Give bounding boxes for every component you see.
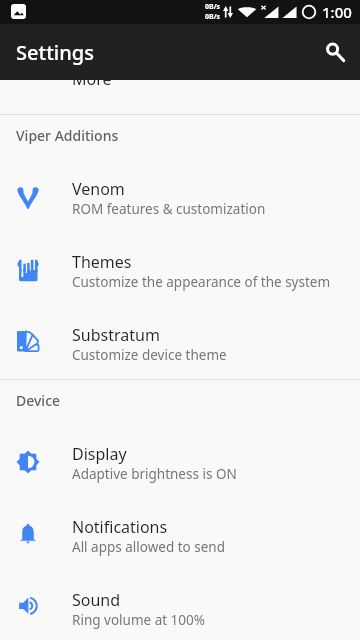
staticText: Themes [72, 251, 132, 273]
staticText: All apps allowed to send [72, 538, 226, 556]
button[interactable]: Display [0, 425, 360, 498]
staticText: Ring volume at 100% [72, 611, 205, 629]
button[interactable]: Search [312, 32, 352, 72]
staticText: Display [72, 443, 127, 465]
button[interactable]: Notifications [0, 498, 360, 571]
staticText: More [72, 68, 112, 90]
button[interactable]: Venom [0, 160, 360, 233]
staticText: Device [16, 391, 61, 410]
button[interactable]: Substratum [0, 306, 360, 379]
staticText: Substratum [72, 324, 160, 346]
staticText: 0B/s [205, 12, 221, 22]
staticText: Viper Additions [16, 126, 119, 145]
staticText: ROM features & customization [72, 200, 266, 218]
staticText: Venom [72, 178, 125, 200]
staticText: Sound [72, 589, 121, 611]
staticText: Customize the appearance of the system [72, 273, 331, 291]
staticText: Notifications [72, 516, 168, 538]
button[interactable]: Themes [0, 233, 360, 306]
staticText: 0B/s [205, 2, 221, 12]
staticText: Settings [16, 39, 94, 66]
staticText: Adaptive brightness is ON [72, 465, 237, 483]
staticText: 1:00 [322, 2, 352, 22]
button[interactable]: Sound [0, 571, 360, 640]
staticText: Customize device theme [72, 346, 227, 364]
